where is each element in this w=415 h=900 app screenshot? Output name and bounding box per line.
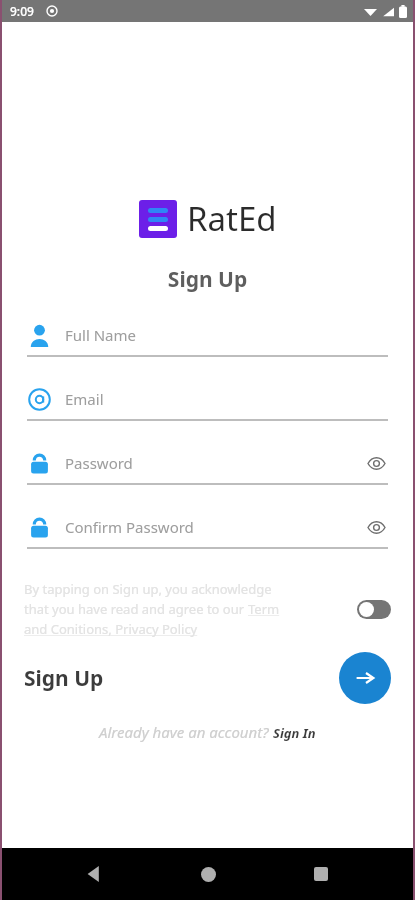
button[interactable]: Confirm Password xyxy=(27,506,388,570)
button[interactable]: Sign Up xyxy=(24,664,104,693)
staticText: Sign Up xyxy=(0,265,415,294)
button[interactable]: Full Name xyxy=(27,314,388,378)
button[interactable]: and Conitions, Privacy Policy xyxy=(24,620,198,638)
button[interactable]: Submit sign up xyxy=(339,652,391,704)
staticText: Password xyxy=(65,453,364,473)
staticText: Confirm Password xyxy=(65,517,364,537)
button[interactable]: Show password xyxy=(364,451,388,475)
staticText: Already have an account? xyxy=(99,722,273,742)
staticText: that you have read and agree to our xyxy=(24,600,248,618)
button[interactable]: Recent apps xyxy=(301,854,341,894)
button[interactable]: Email xyxy=(27,378,388,442)
button[interactable]: Back xyxy=(74,854,114,894)
staticText: RatEd xyxy=(187,196,277,241)
staticText: By tapping on Sign up, you acknowledge xyxy=(24,580,272,598)
button[interactable]: Show password xyxy=(364,515,388,539)
staticText: Email xyxy=(65,389,388,409)
button[interactable]: Password xyxy=(27,442,388,506)
button[interactable]: Accept terms toggle xyxy=(357,600,391,619)
button[interactable]: Term xyxy=(248,600,280,618)
button[interactable]: Home xyxy=(188,854,228,894)
staticText: Full Name xyxy=(65,325,388,345)
button[interactable]: Sign In xyxy=(273,724,316,742)
staticText: 9:09 xyxy=(10,3,34,19)
